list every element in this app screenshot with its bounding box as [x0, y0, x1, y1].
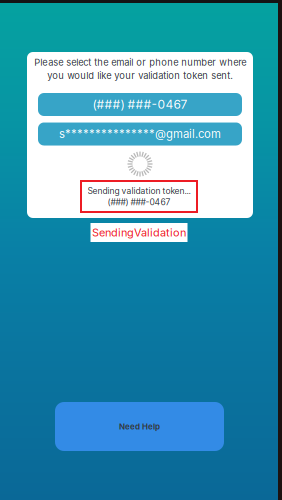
- staticText: SendingValidation: [92, 226, 186, 239]
- staticText: Please select the email or phone number …: [34, 57, 246, 81]
- staticText: Sending validation token...: [87, 186, 190, 196]
- button[interactable]: s***************@gmail.com: [38, 122, 242, 145]
- staticText: Need Help: [119, 422, 160, 431]
- staticText: s***************@gmail.com: [59, 127, 221, 141]
- button[interactable]: Need Help: [55, 402, 224, 451]
- button[interactable]: (###) ###-0467: [38, 93, 242, 116]
- staticText: (###) ###-0467: [92, 97, 187, 112]
- staticText: (###) ###-0467: [107, 197, 170, 207]
